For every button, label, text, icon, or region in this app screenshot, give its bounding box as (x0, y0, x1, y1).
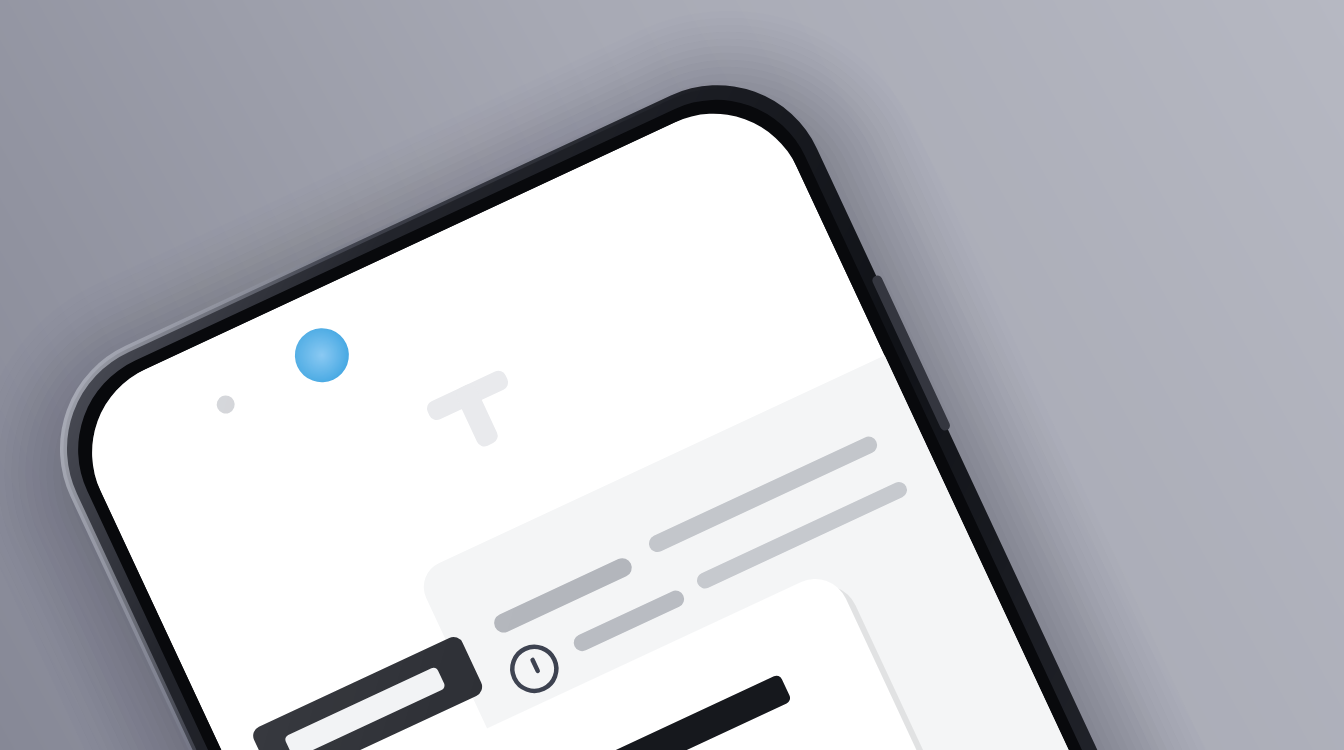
button[interactable]: Message card (470, 560, 1030, 750)
button[interactable]: History row (1100, 560, 1340, 670)
button[interactable]: Filter tab (330, 520, 545, 590)
button[interactable]: Notifications (905, 205, 945, 245)
button[interactable]: Mark as done (485, 690, 565, 750)
